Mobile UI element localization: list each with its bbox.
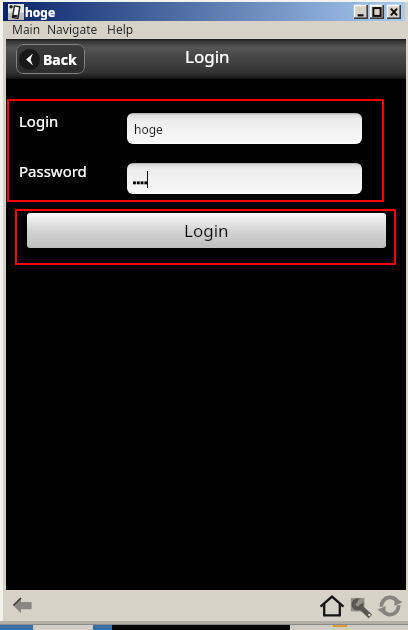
staticText: Login [184,219,229,242]
button[interactable]: Help [104,22,137,38]
staticText: Main [12,21,41,37]
staticText: Password [19,161,87,181]
staticText: hoge [25,4,56,20]
button[interactable] [127,163,362,194]
button[interactable]: Back [16,44,85,74]
staticText: Back [43,50,77,69]
button[interactable]: Refresh [377,593,403,619]
button[interactable]: Main [9,22,44,38]
staticText: Login [19,111,59,131]
button[interactable]: Close [387,5,401,19]
staticText: Navigate [47,21,98,37]
button[interactable]: hoge [127,113,362,144]
button[interactable]: Login [27,213,386,248]
staticText: Login [185,45,230,68]
button[interactable]: Maximize [370,5,384,19]
button[interactable]: Navigate [44,22,101,38]
staticText: hoge [134,121,163,137]
button[interactable]: Minimize [354,5,368,19]
button[interactable]: Settings [348,593,374,619]
button[interactable]: Home [319,593,345,619]
staticText: Help [107,21,134,37]
button[interactable]: Back [13,597,32,614]
